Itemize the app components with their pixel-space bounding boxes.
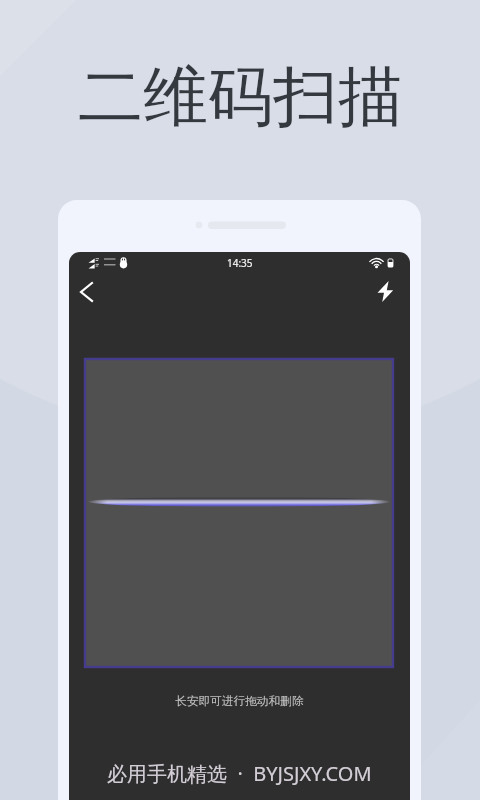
staticText: 长安即可进行拖动和删除 [175, 694, 304, 709]
staticText: 二维码扫描 [78, 56, 403, 138]
staticText: 14:35 [227, 256, 253, 270]
button[interactable]: Toggle flash [367, 273, 405, 311]
staticText: 必用手机精选 · BYJSJXY.COM [107, 760, 372, 787]
button[interactable]: Back [69, 273, 107, 311]
